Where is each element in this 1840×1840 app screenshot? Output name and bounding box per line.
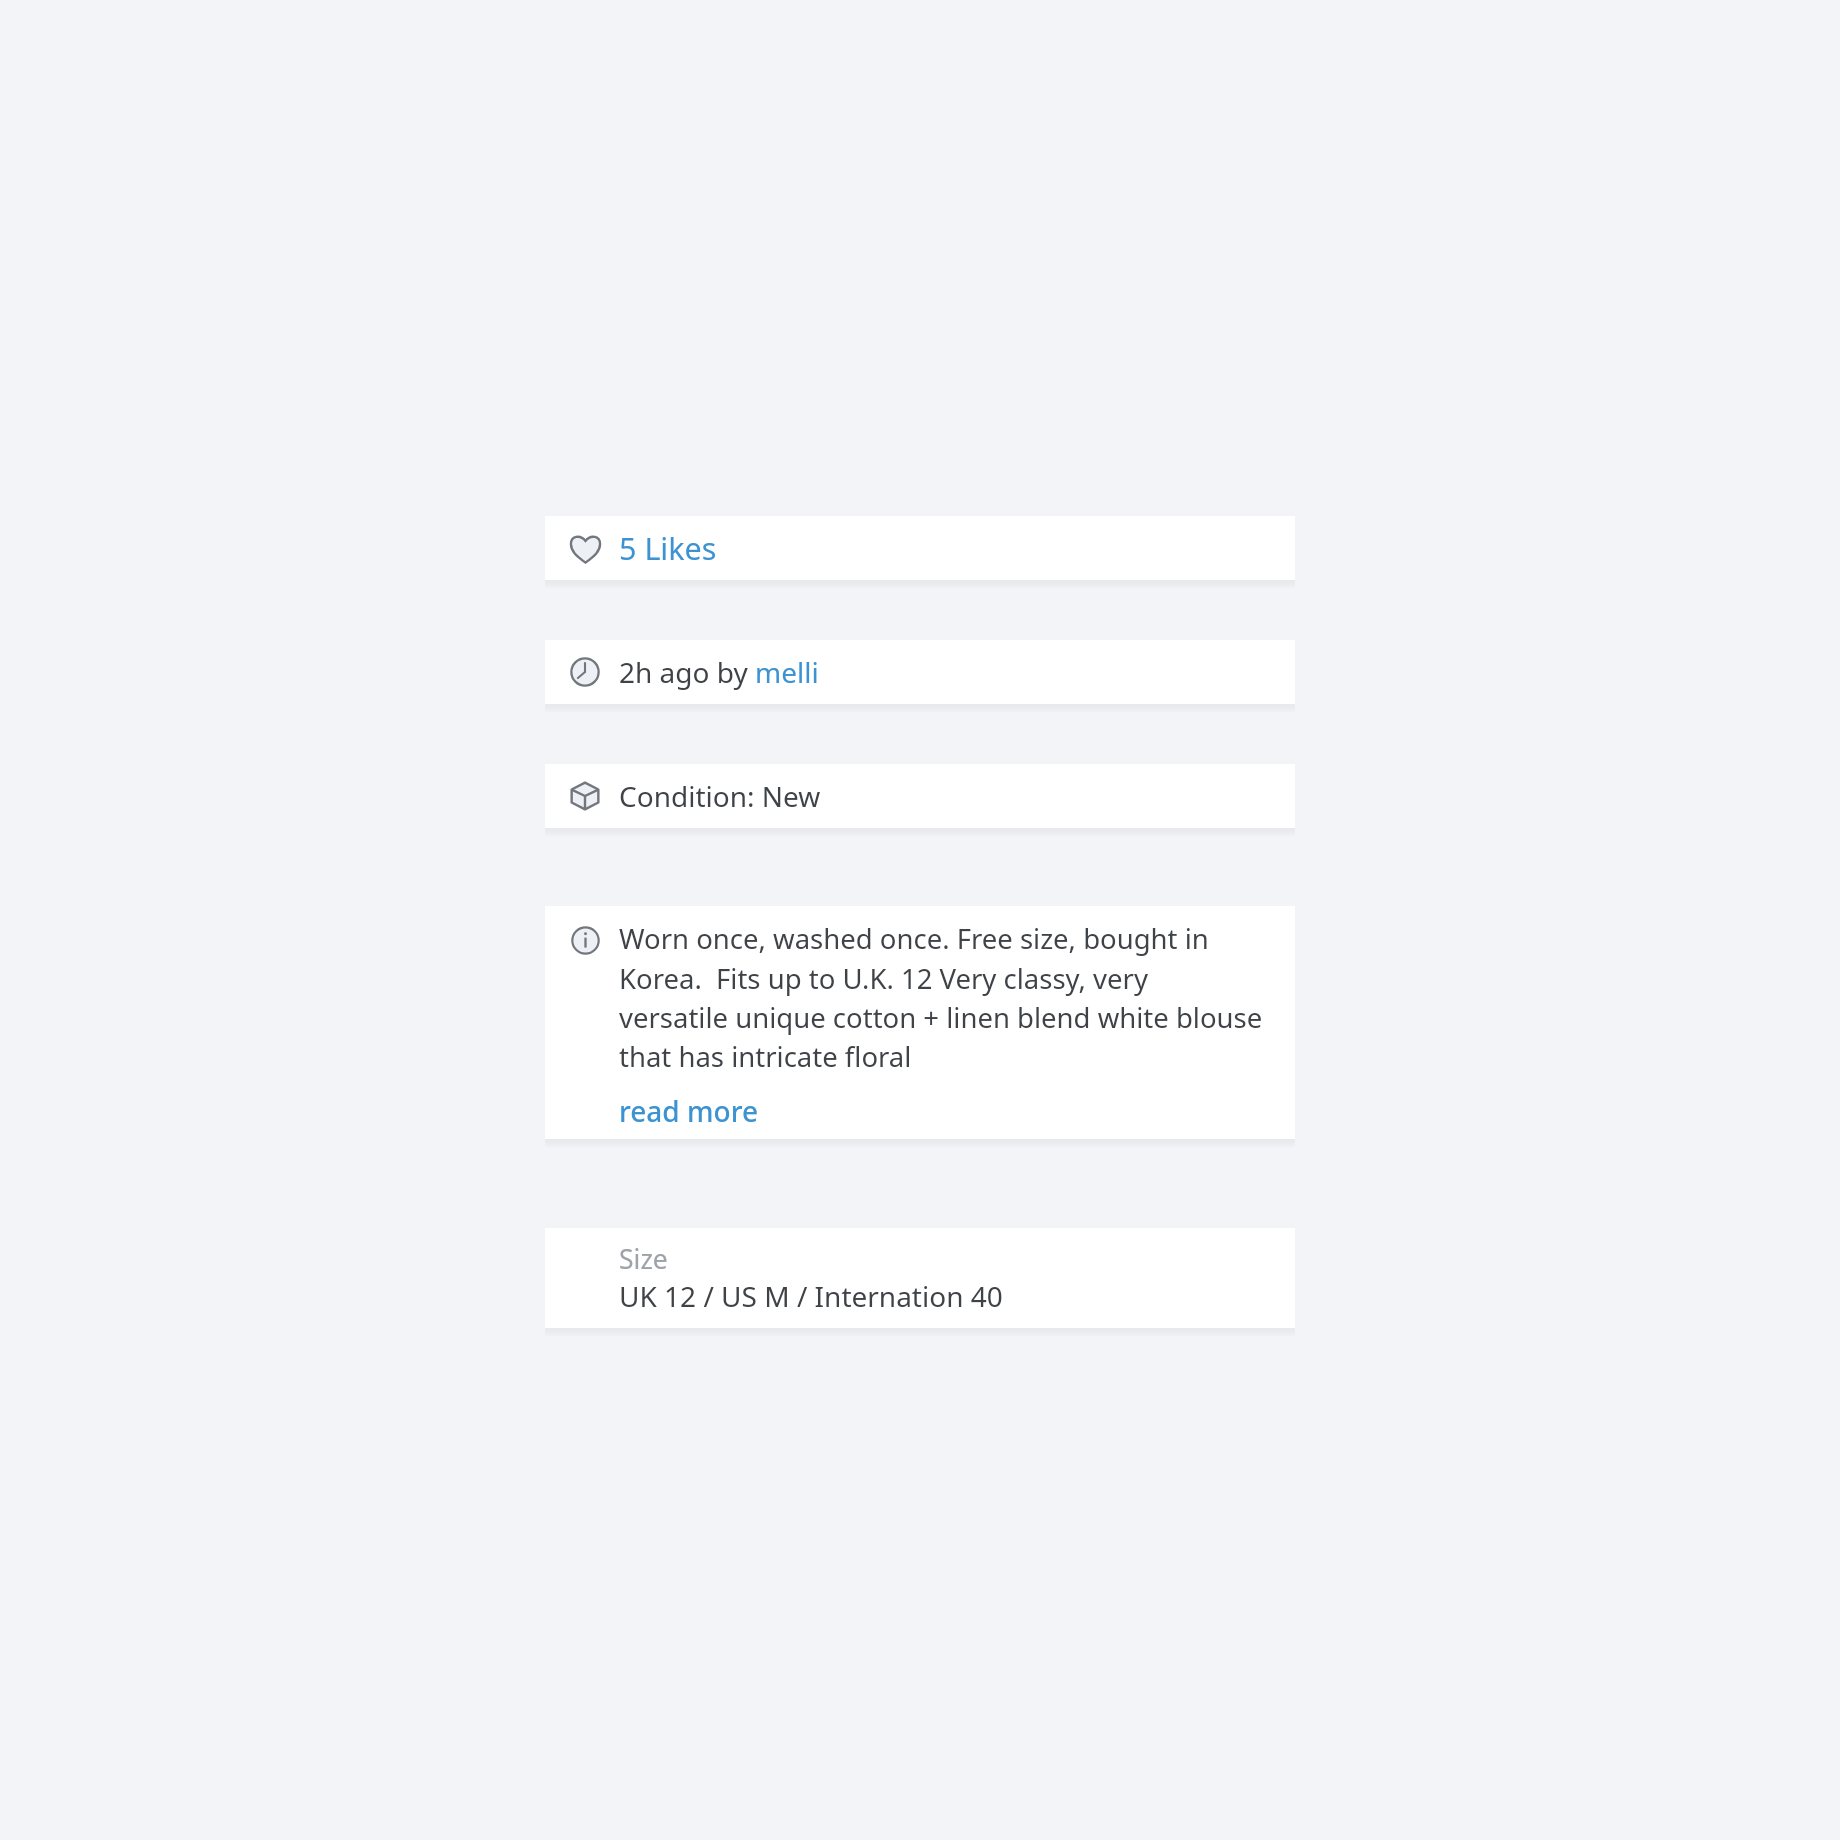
staticText: 2h ago by melli (619, 653, 819, 691)
staticText: Worn once, washed once. Free size, bough… (619, 920, 1264, 1075)
button[interactable]: Condition (545, 764, 1295, 828)
button[interactable]: Description (545, 906, 1295, 1139)
button[interactable]: read more (619, 1092, 758, 1130)
staticText: Condition: New (619, 777, 821, 815)
button[interactable]: Size (545, 1228, 1295, 1328)
other: Posted time (567, 654, 603, 690)
staticText: UK 12 / US M / Internation 40 (619, 1277, 1003, 1315)
button[interactable]: Like (545, 516, 1295, 580)
other: Description (567, 922, 603, 958)
staticText: 5 Likes (619, 527, 717, 569)
other: Like (567, 530, 603, 566)
staticText: read more (619, 1092, 758, 1130)
staticText: Size (619, 1241, 668, 1277)
button[interactable]: Posted time (545, 640, 1295, 704)
other: Condition (567, 778, 603, 814)
